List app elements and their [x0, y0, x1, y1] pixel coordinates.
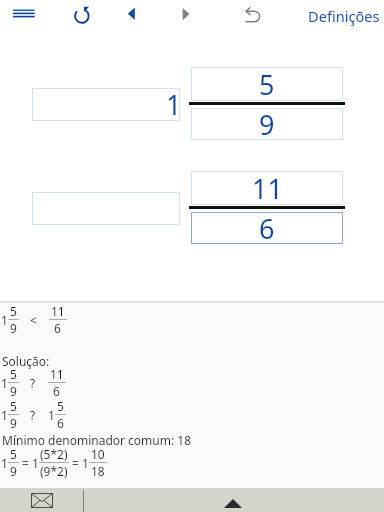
staticText: 9 — [10, 463, 17, 479]
staticText: (9*2) — [40, 463, 68, 479]
staticText: Mínimo denominador comum: 18 — [2, 432, 192, 448]
staticText: 5 — [10, 446, 17, 462]
button[interactable]: 11 — [191, 171, 343, 205]
staticText: 10 — [91, 446, 105, 462]
staticText: 1 — [48, 407, 55, 423]
button[interactable]: 9 — [191, 108, 343, 140]
staticText: ? — [30, 407, 36, 423]
button[interactable]: 5 — [191, 67, 343, 101]
staticText: 6 — [53, 383, 60, 399]
staticText: Definições — [308, 6, 380, 26]
staticText: 18 — [91, 463, 105, 479]
staticText: 11 — [50, 366, 64, 382]
button[interactable]: 6 — [191, 212, 343, 244]
button[interactable]: Definições — [308, 6, 380, 26]
button[interactable]: Menu — [8, 0, 40, 32]
button[interactable]: Previous — [116, 0, 148, 32]
staticText: 5 — [10, 303, 17, 319]
staticText: 5 — [259, 66, 275, 100]
staticText: 5 — [57, 398, 64, 414]
staticText: < — [30, 312, 37, 328]
staticText: 9 — [259, 106, 275, 138]
staticText: = 1 — [69, 455, 89, 471]
staticText: ? — [30, 375, 36, 391]
staticText: 9 — [10, 383, 17, 399]
staticText: 6 — [57, 415, 64, 431]
staticText: 11 — [252, 170, 283, 204]
staticText: 6 — [259, 210, 275, 242]
staticText: 1 — [1, 407, 8, 423]
staticText: Solução: — [2, 353, 50, 369]
staticText: 1 — [166, 86, 182, 119]
button[interactable]: Mail — [31, 493, 53, 508]
staticText: 1 — [1, 455, 8, 471]
staticText: 6 — [54, 320, 61, 336]
button[interactable]: Refresh — [66, 0, 98, 32]
staticText: 1 — [1, 312, 8, 328]
button[interactable]: Undo — [238, 0, 272, 34]
button[interactable]: 1 — [32, 88, 180, 121]
staticText: 5 — [10, 398, 17, 414]
button[interactable] — [32, 192, 180, 225]
staticText: 9 — [10, 415, 17, 431]
staticText: 1 — [1, 375, 8, 391]
staticText: 5 — [10, 366, 17, 382]
button[interactable]: Next — [170, 0, 202, 32]
staticText: 11 — [51, 303, 65, 319]
staticText: (5*2) — [40, 446, 68, 462]
staticText: 9 — [10, 320, 17, 336]
staticText: = 1 — [19, 455, 39, 471]
button[interactable]: Expand keyboard — [224, 499, 242, 508]
